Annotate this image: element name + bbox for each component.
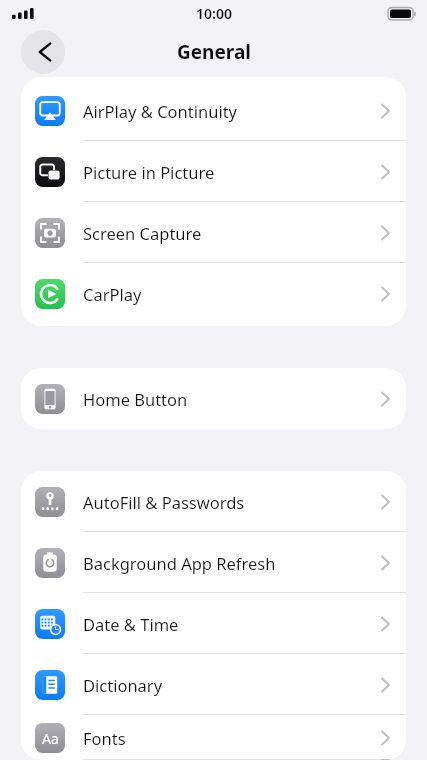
staticText: Screen Capture <box>83 222 202 244</box>
staticText: General <box>177 39 251 65</box>
staticText: AutoFill & Passwords <box>83 491 245 513</box>
button[interactable]: Dictionary <box>21 654 406 715</box>
staticText: Dictionary <box>83 674 163 696</box>
staticText: Date & Time <box>83 613 179 635</box>
button[interactable]: Screen Capture <box>21 202 406 263</box>
staticText: Home Button <box>83 388 188 410</box>
button[interactable]: Back <box>21 30 65 74</box>
staticText: Aa <box>42 729 59 748</box>
button[interactable]: AutoFill & Passwords <box>21 471 406 532</box>
staticText: AirPlay & Continuity <box>83 100 238 122</box>
button[interactable]: AirPlay & Continuity <box>21 80 406 141</box>
staticText: CarPlay <box>83 283 142 305</box>
staticText: Fonts <box>83 727 126 749</box>
button[interactable]: Home Button <box>21 368 406 429</box>
button[interactable]: Aa <box>21 715 406 760</box>
button[interactable]: Date & Time <box>21 593 406 654</box>
button[interactable]: CarPlay <box>21 263 406 324</box>
staticText: Background App Refresh <box>83 552 276 574</box>
staticText: 10:00 <box>196 4 232 23</box>
button[interactable]: Background App Refresh <box>21 532 406 593</box>
staticText: Picture in Picture <box>83 161 215 183</box>
button[interactable]: Picture in Picture <box>21 141 406 202</box>
